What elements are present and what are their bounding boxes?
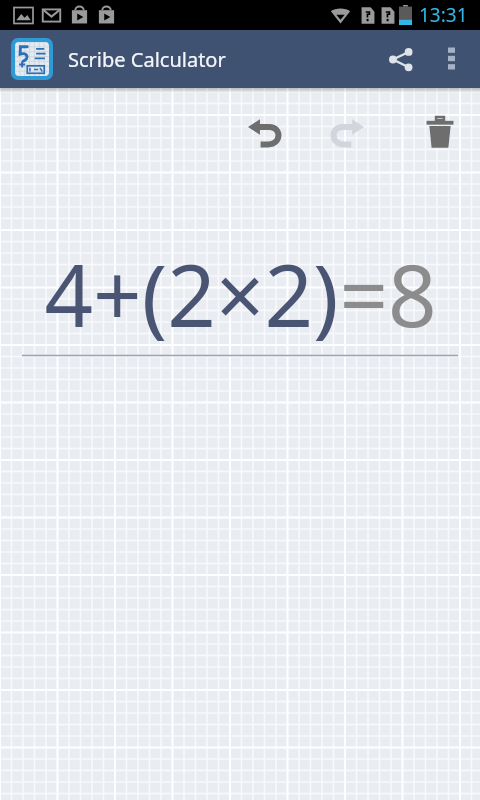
staticText: =8 [339, 236, 437, 352]
staticText: Scribe Calculator [68, 46, 226, 73]
button[interactable]: Clear [409, 108, 471, 158]
button[interactable]: App icon [11, 38, 53, 80]
staticText: 4+(2×2) [44, 236, 339, 352]
staticText: 13:31 [419, 2, 468, 28]
button[interactable]: Share [372, 31, 428, 87]
button[interactable]: Redo [317, 108, 379, 158]
button[interactable]: More options [428, 36, 474, 82]
button[interactable]: Undo [233, 108, 295, 158]
